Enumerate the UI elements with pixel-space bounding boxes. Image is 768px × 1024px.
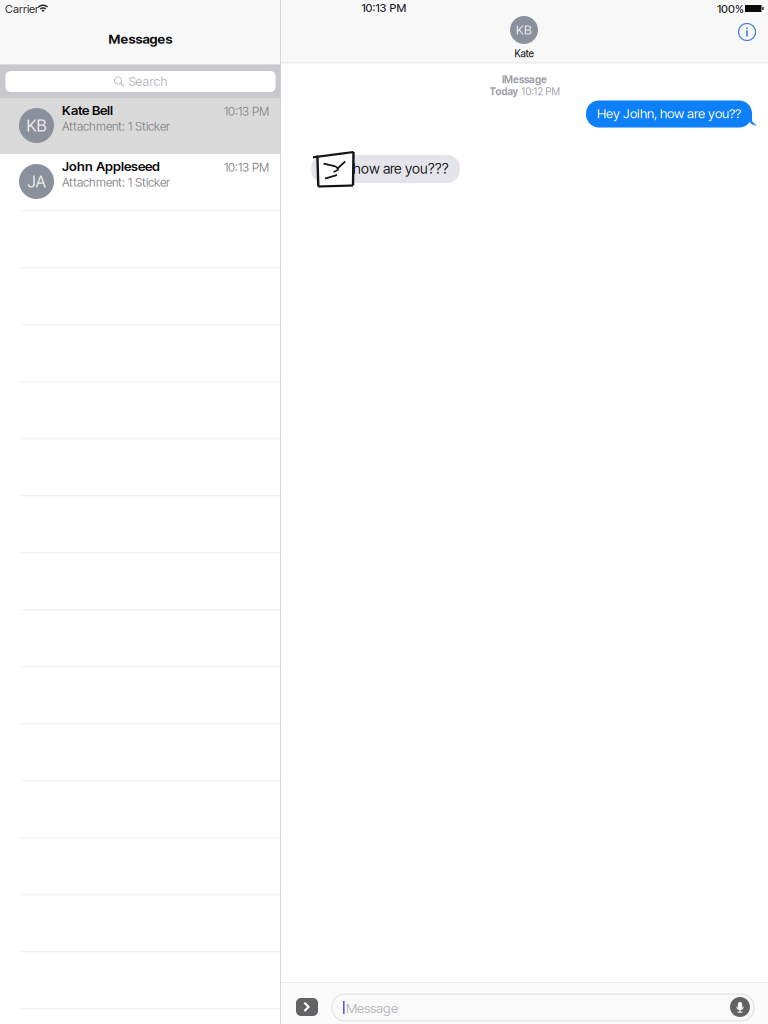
staticText: Messages	[108, 31, 172, 47]
staticText: 10:13 PM	[224, 104, 269, 118]
staticText: JA	[27, 171, 45, 192]
staticText: Hey, how are you???	[322, 160, 449, 177]
button[interactable]: JA	[0, 154, 281, 210]
staticText: 10:13 PM	[224, 160, 269, 174]
staticText: Attachment: 1 Sticker	[62, 175, 170, 189]
button[interactable]: KB	[0, 98, 281, 154]
staticText: Search	[128, 74, 167, 89]
staticText: Message	[346, 1000, 398, 1016]
button[interactable]: Record audio	[730, 997, 750, 1017]
staticText: Kate Bell	[62, 102, 113, 118]
staticText: 10:13 PM	[361, 1, 406, 15]
button[interactable]: Apps	[296, 998, 318, 1016]
staticText: Hey Joihn, how are you??	[597, 105, 741, 121]
staticText: 10:12 PM	[521, 85, 559, 98]
staticText: Kate	[514, 47, 533, 60]
staticText: iMessage	[502, 73, 547, 86]
button[interactable]: Details	[730, 15, 764, 49]
staticText: Carrier	[5, 2, 39, 16]
staticText: John Appleseed	[62, 158, 160, 174]
staticText: 100%	[717, 2, 744, 16]
staticText: Today	[489, 85, 518, 98]
staticText: Attachment: 1 Sticker	[62, 119, 170, 133]
staticText: KB	[516, 22, 532, 38]
staticText: KB	[26, 115, 46, 136]
